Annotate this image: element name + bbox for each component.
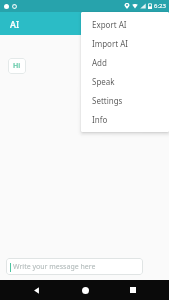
button[interactable]: Back (24, 280, 48, 300)
staticText: Speak (92, 76, 115, 87)
button[interactable]: Settings (81, 91, 169, 110)
button[interactable]: Speak (81, 72, 169, 91)
staticText: AI (10, 18, 20, 30)
staticText: Import AI (92, 38, 129, 49)
button[interactable]: Home (73, 280, 97, 300)
button[interactable]: Write your message here (6, 258, 143, 275)
staticText: Write your message here (13, 262, 96, 272)
button[interactable]: Import AI (81, 34, 169, 53)
staticText: Hi (13, 61, 21, 71)
button[interactable]: Export AI (81, 15, 169, 34)
button[interactable]: Add (81, 53, 169, 72)
staticText: Add (92, 57, 107, 68)
staticText: Info (92, 114, 108, 125)
button[interactable]: Hi (8, 58, 26, 74)
button[interactable]: Recent apps (121, 280, 145, 300)
staticText: 6:23 (154, 2, 166, 10)
staticText: Export AI (92, 19, 127, 30)
staticText: Settings (92, 95, 123, 106)
button[interactable]: Info (81, 110, 169, 129)
